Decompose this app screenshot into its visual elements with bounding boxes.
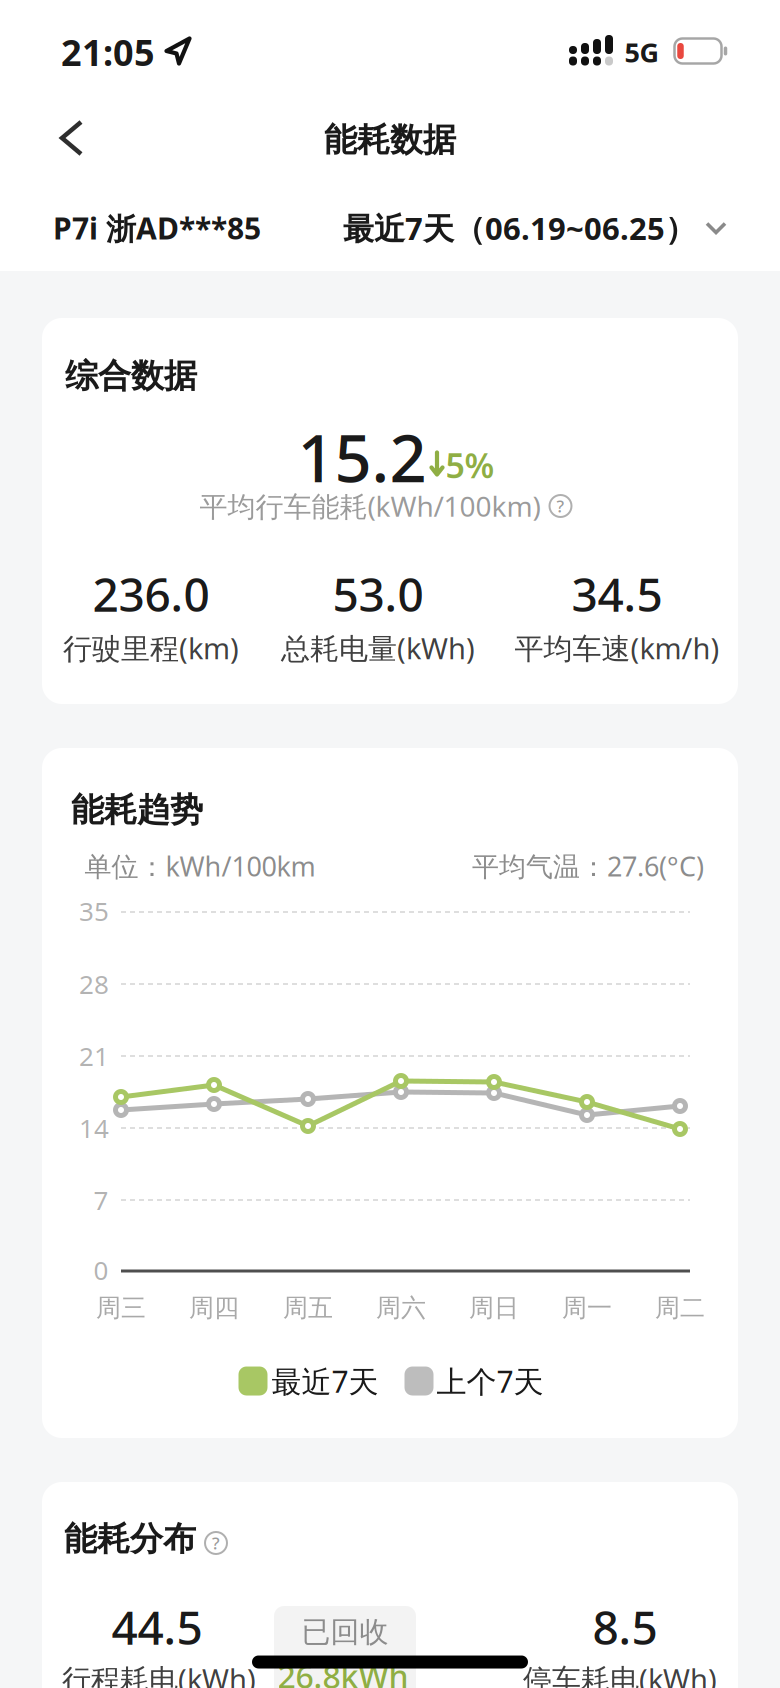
staticText: ? — [556, 494, 564, 518]
staticText: 周三 — [96, 1292, 146, 1324]
staticText: 单位：kWh/100km — [84, 848, 315, 884]
staticText: 上个7天 — [436, 1361, 543, 1401]
staticText: 停车耗电(kWh) — [523, 1659, 717, 1688]
staticText: 周六 — [376, 1292, 426, 1324]
staticText: 已回收 — [301, 1614, 388, 1650]
staticText: 平均车速(km/h) — [514, 628, 719, 668]
staticText: 周五 — [283, 1292, 333, 1324]
staticText: 总耗电量(kWh) — [281, 628, 475, 668]
staticText: 7 — [93, 1182, 108, 1218]
staticText: 5G — [624, 34, 659, 70]
staticText: 最近7天 — [271, 1361, 378, 1401]
button[interactable]: 能耗分布说明 — [204, 1531, 228, 1555]
staticText: 15.2 — [297, 413, 426, 501]
staticText: 21 — [79, 1038, 109, 1074]
staticText: ? — [212, 1531, 220, 1555]
staticText: 周四 — [189, 1292, 239, 1324]
staticText: P7i 浙AD***85 — [53, 207, 261, 248]
button[interactable]: 综合数据说明 — [548, 494, 572, 518]
staticText: 平均行车能耗(kWh/100km) — [199, 487, 540, 525]
staticText: 周二 — [655, 1292, 705, 1324]
staticText: 行驶里程(km) — [63, 628, 239, 668]
staticText: 能耗趋势 — [71, 789, 203, 831]
staticText: 21:05 — [61, 27, 155, 76]
staticText: 最近7天（06.19~06.25） — [343, 207, 696, 249]
staticText: 平均气温：27.6(°C) — [472, 848, 704, 884]
staticText: 周一 — [562, 1292, 612, 1324]
staticText: 能耗数据 — [324, 119, 456, 161]
staticText: 0 — [93, 1252, 108, 1288]
button[interactable]: 最近7天（06.19~06.25） — [343, 207, 727, 249]
staticText: 34.5 — [571, 563, 662, 625]
button[interactable]: Back — [59, 118, 85, 158]
staticText: 26.8kWh — [277, 1654, 408, 1688]
staticText: 5% — [445, 442, 494, 488]
staticText: 综合数据 — [65, 355, 197, 397]
staticText: 53.0 — [332, 563, 423, 625]
staticText: 行程耗电(kWh) — [62, 1659, 256, 1688]
staticText: 35 — [79, 893, 109, 929]
staticText: 周日 — [469, 1292, 519, 1324]
staticText: 28 — [79, 966, 109, 1002]
staticText: 236.0 — [92, 563, 209, 625]
staticText: 44.5 — [111, 1596, 202, 1658]
staticText: 能耗分布 — [64, 1518, 196, 1560]
staticText: 8.5 — [592, 1596, 657, 1658]
staticText: 14 — [79, 1110, 109, 1146]
